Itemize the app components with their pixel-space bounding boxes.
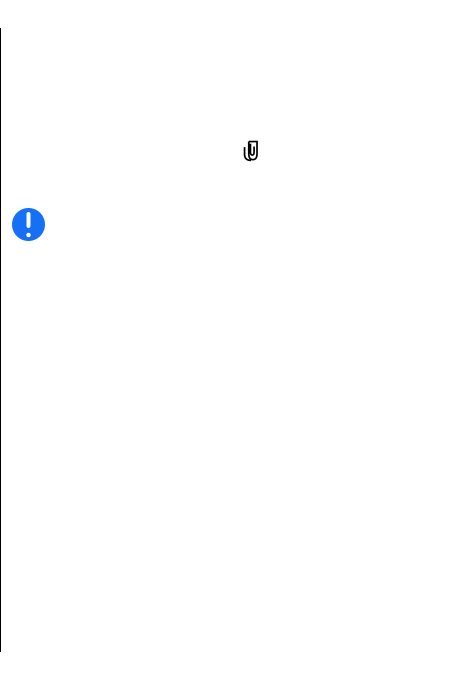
button[interactable]: Attachment xyxy=(244,141,258,160)
button[interactable]: Details xyxy=(12,208,45,241)
